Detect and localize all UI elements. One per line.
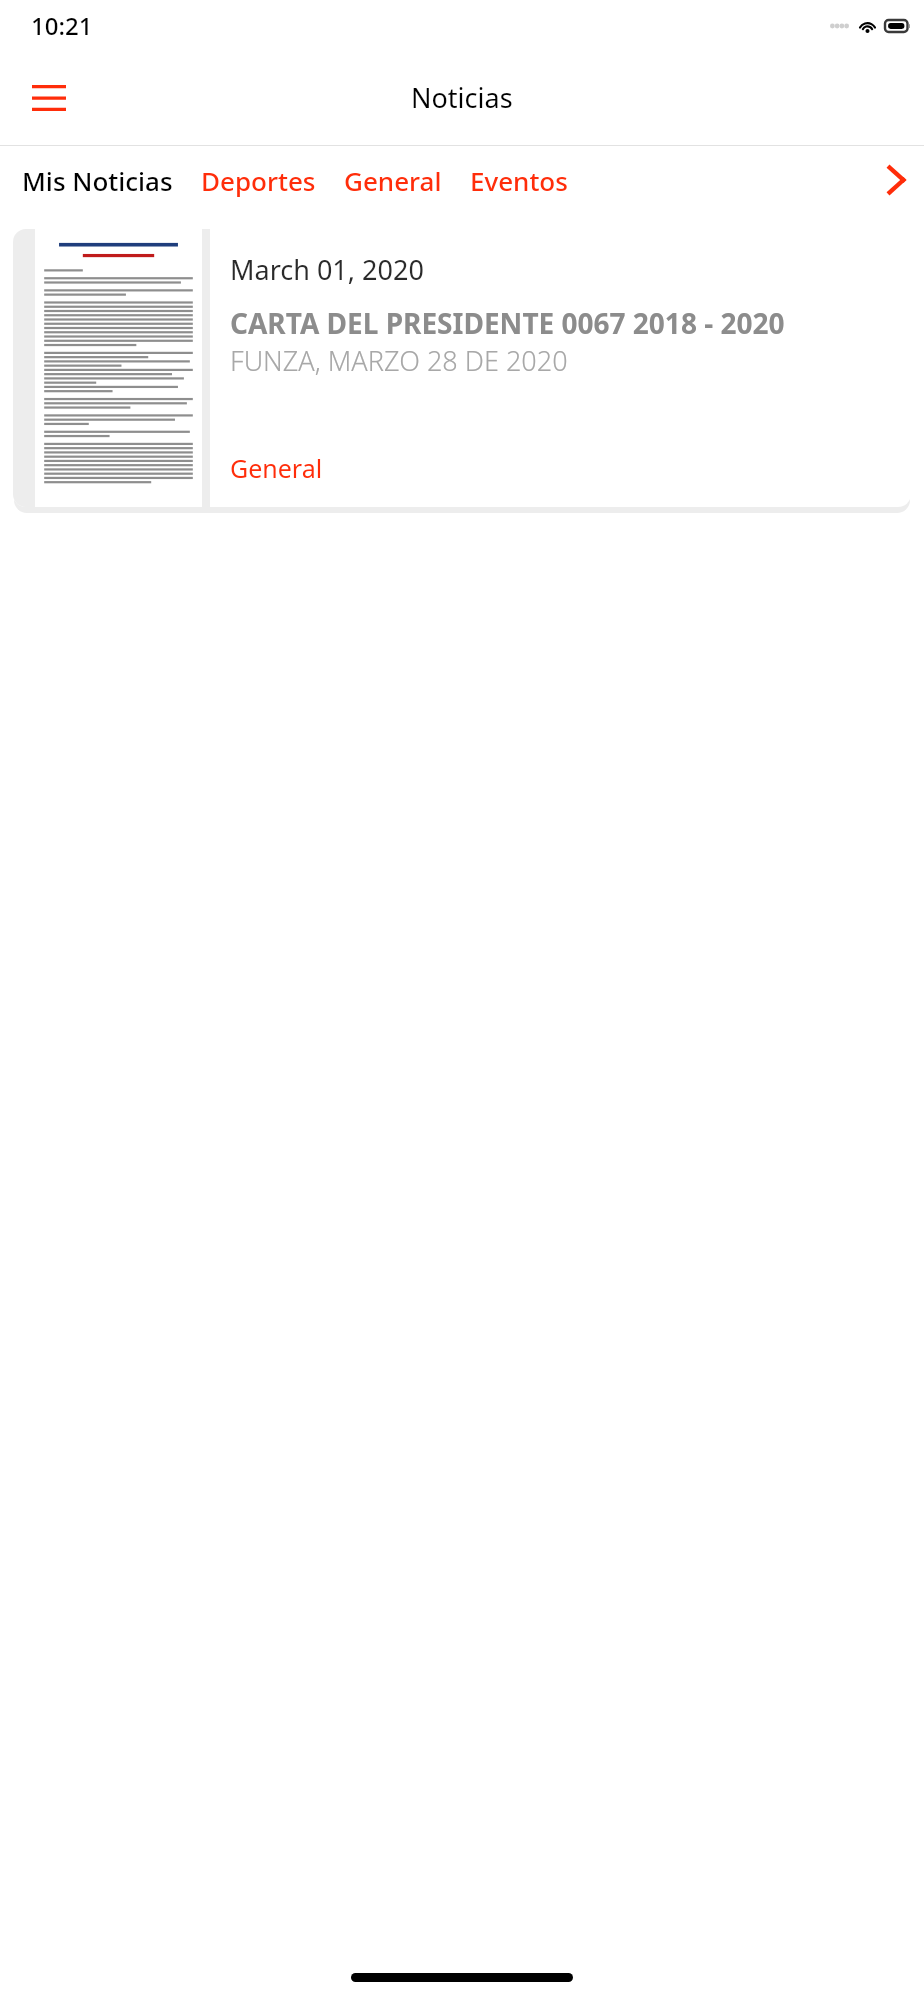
staticText: FUNZA, MARZO 28 DE 2020 xyxy=(230,342,568,379)
staticText: CARTA DEL PRESIDENTE 0067 2018 - 2020 xyxy=(230,304,785,342)
staticText: Eventos xyxy=(470,163,568,198)
staticText: 10:21 xyxy=(31,9,93,42)
button[interactable]: Mis Noticias xyxy=(18,155,177,206)
staticText: Deportes xyxy=(201,163,316,198)
button[interactable]: General xyxy=(340,155,446,206)
button[interactable]: Deportes xyxy=(197,155,320,206)
staticText: Noticias xyxy=(411,79,513,116)
button[interactable]: More categories xyxy=(873,155,920,205)
staticText: March 01, 2020 xyxy=(230,251,424,288)
staticText: General xyxy=(230,451,323,485)
staticText: Mis Noticias xyxy=(22,163,173,198)
button[interactable]: Eventos xyxy=(466,155,572,206)
button[interactable]: March 01, 2020 xyxy=(13,229,911,507)
staticText: General xyxy=(344,163,442,198)
button[interactable]: Open navigation menu xyxy=(22,75,76,121)
